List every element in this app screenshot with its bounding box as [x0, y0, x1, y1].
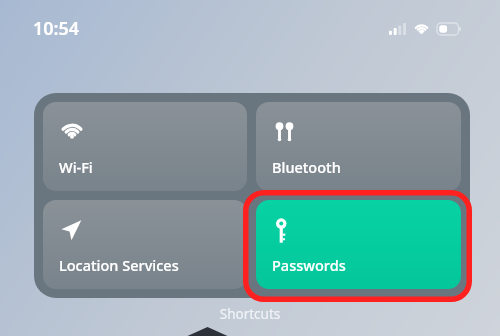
button[interactable]: Location Services [43, 200, 247, 289]
staticText: Bluetooth [272, 157, 341, 177]
button[interactable]: Bluetooth [256, 102, 461, 191]
staticText: Wi-Fi [59, 157, 93, 177]
button[interactable]: Wi-Fi [43, 102, 247, 191]
staticText: Passwords [272, 255, 346, 275]
staticText: 10:54 [33, 16, 80, 41]
other: Highlighted Passwords shortcut [243, 190, 472, 302]
staticText: Shortcuts [0, 305, 500, 323]
staticText: Location Services [59, 255, 179, 275]
button[interactable]: Passwords [256, 200, 461, 289]
